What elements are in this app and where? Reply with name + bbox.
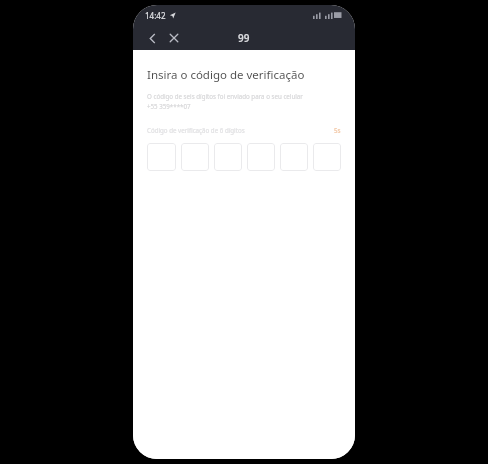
button[interactable]: Digit 2 [181,143,209,171]
button[interactable]: Digit 6 [313,143,341,171]
staticText: Código de verificação de 6 dígitos [147,126,245,134]
staticText: 99 [238,31,250,45]
staticText: 14:42 [145,10,166,21]
staticText: O código de seis dígitos foi enviado par… [147,92,303,111]
button[interactable]: Close [163,27,185,49]
staticText: Insira o código de verificação [147,67,305,83]
staticText: 5s [334,126,341,134]
button[interactable]: Digit 4 [247,143,275,171]
button[interactable]: Back [141,27,163,49]
button[interactable]: Digit 1 [147,143,176,171]
button[interactable]: 5s [334,126,341,134]
button[interactable]: Digit 5 [280,143,308,171]
button[interactable]: Digit 3 [214,143,242,171]
